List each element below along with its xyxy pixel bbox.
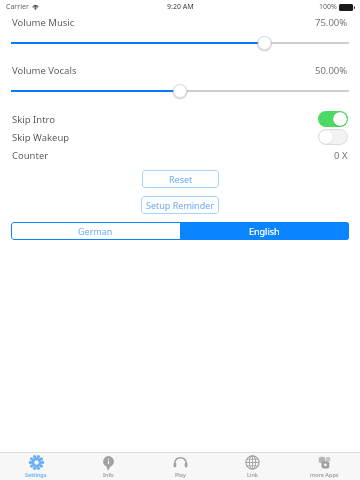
staticText: 50.00% (315, 64, 348, 77)
button[interactable]: Info (72, 453, 144, 480)
staticText: Setup Reminder (146, 199, 215, 211)
staticText: Skip Intro (12, 113, 56, 126)
staticText: English (249, 225, 280, 237)
staticText: more Apps (310, 471, 339, 478)
staticText: 75.00% (315, 16, 348, 29)
button[interactable]: more Apps (288, 453, 360, 480)
button[interactable] (11, 36, 349, 50)
staticText: 0 X (334, 149, 348, 162)
staticText: German (78, 225, 113, 237)
staticText: Settings (25, 471, 47, 478)
staticText: Carrier (6, 2, 29, 12)
button[interactable]: Skip Intro (0, 110, 360, 128)
button[interactable]: Play (144, 453, 216, 480)
staticText: Link (247, 471, 258, 478)
staticText: 100% (319, 2, 337, 12)
staticText: Volume Music (12, 16, 75, 29)
staticText: Skip Wakeup (12, 131, 70, 144)
staticText: Reset (169, 173, 193, 185)
staticText: Info (103, 471, 114, 478)
button[interactable]: German (11, 222, 180, 240)
button[interactable]: Reset (142, 170, 219, 188)
staticText: Counter (12, 149, 49, 162)
staticText: 9:20 AM (167, 2, 194, 12)
button[interactable]: Setup Reminder (141, 196, 219, 214)
button[interactable]: Link (216, 453, 288, 480)
button[interactable]: Settings (0, 453, 72, 480)
button[interactable] (11, 84, 349, 98)
staticText: Play (175, 471, 186, 478)
button[interactable]: English (180, 222, 349, 240)
staticText: Volume Vocals (12, 64, 77, 77)
button[interactable]: Skip Wakeup (0, 128, 360, 146)
